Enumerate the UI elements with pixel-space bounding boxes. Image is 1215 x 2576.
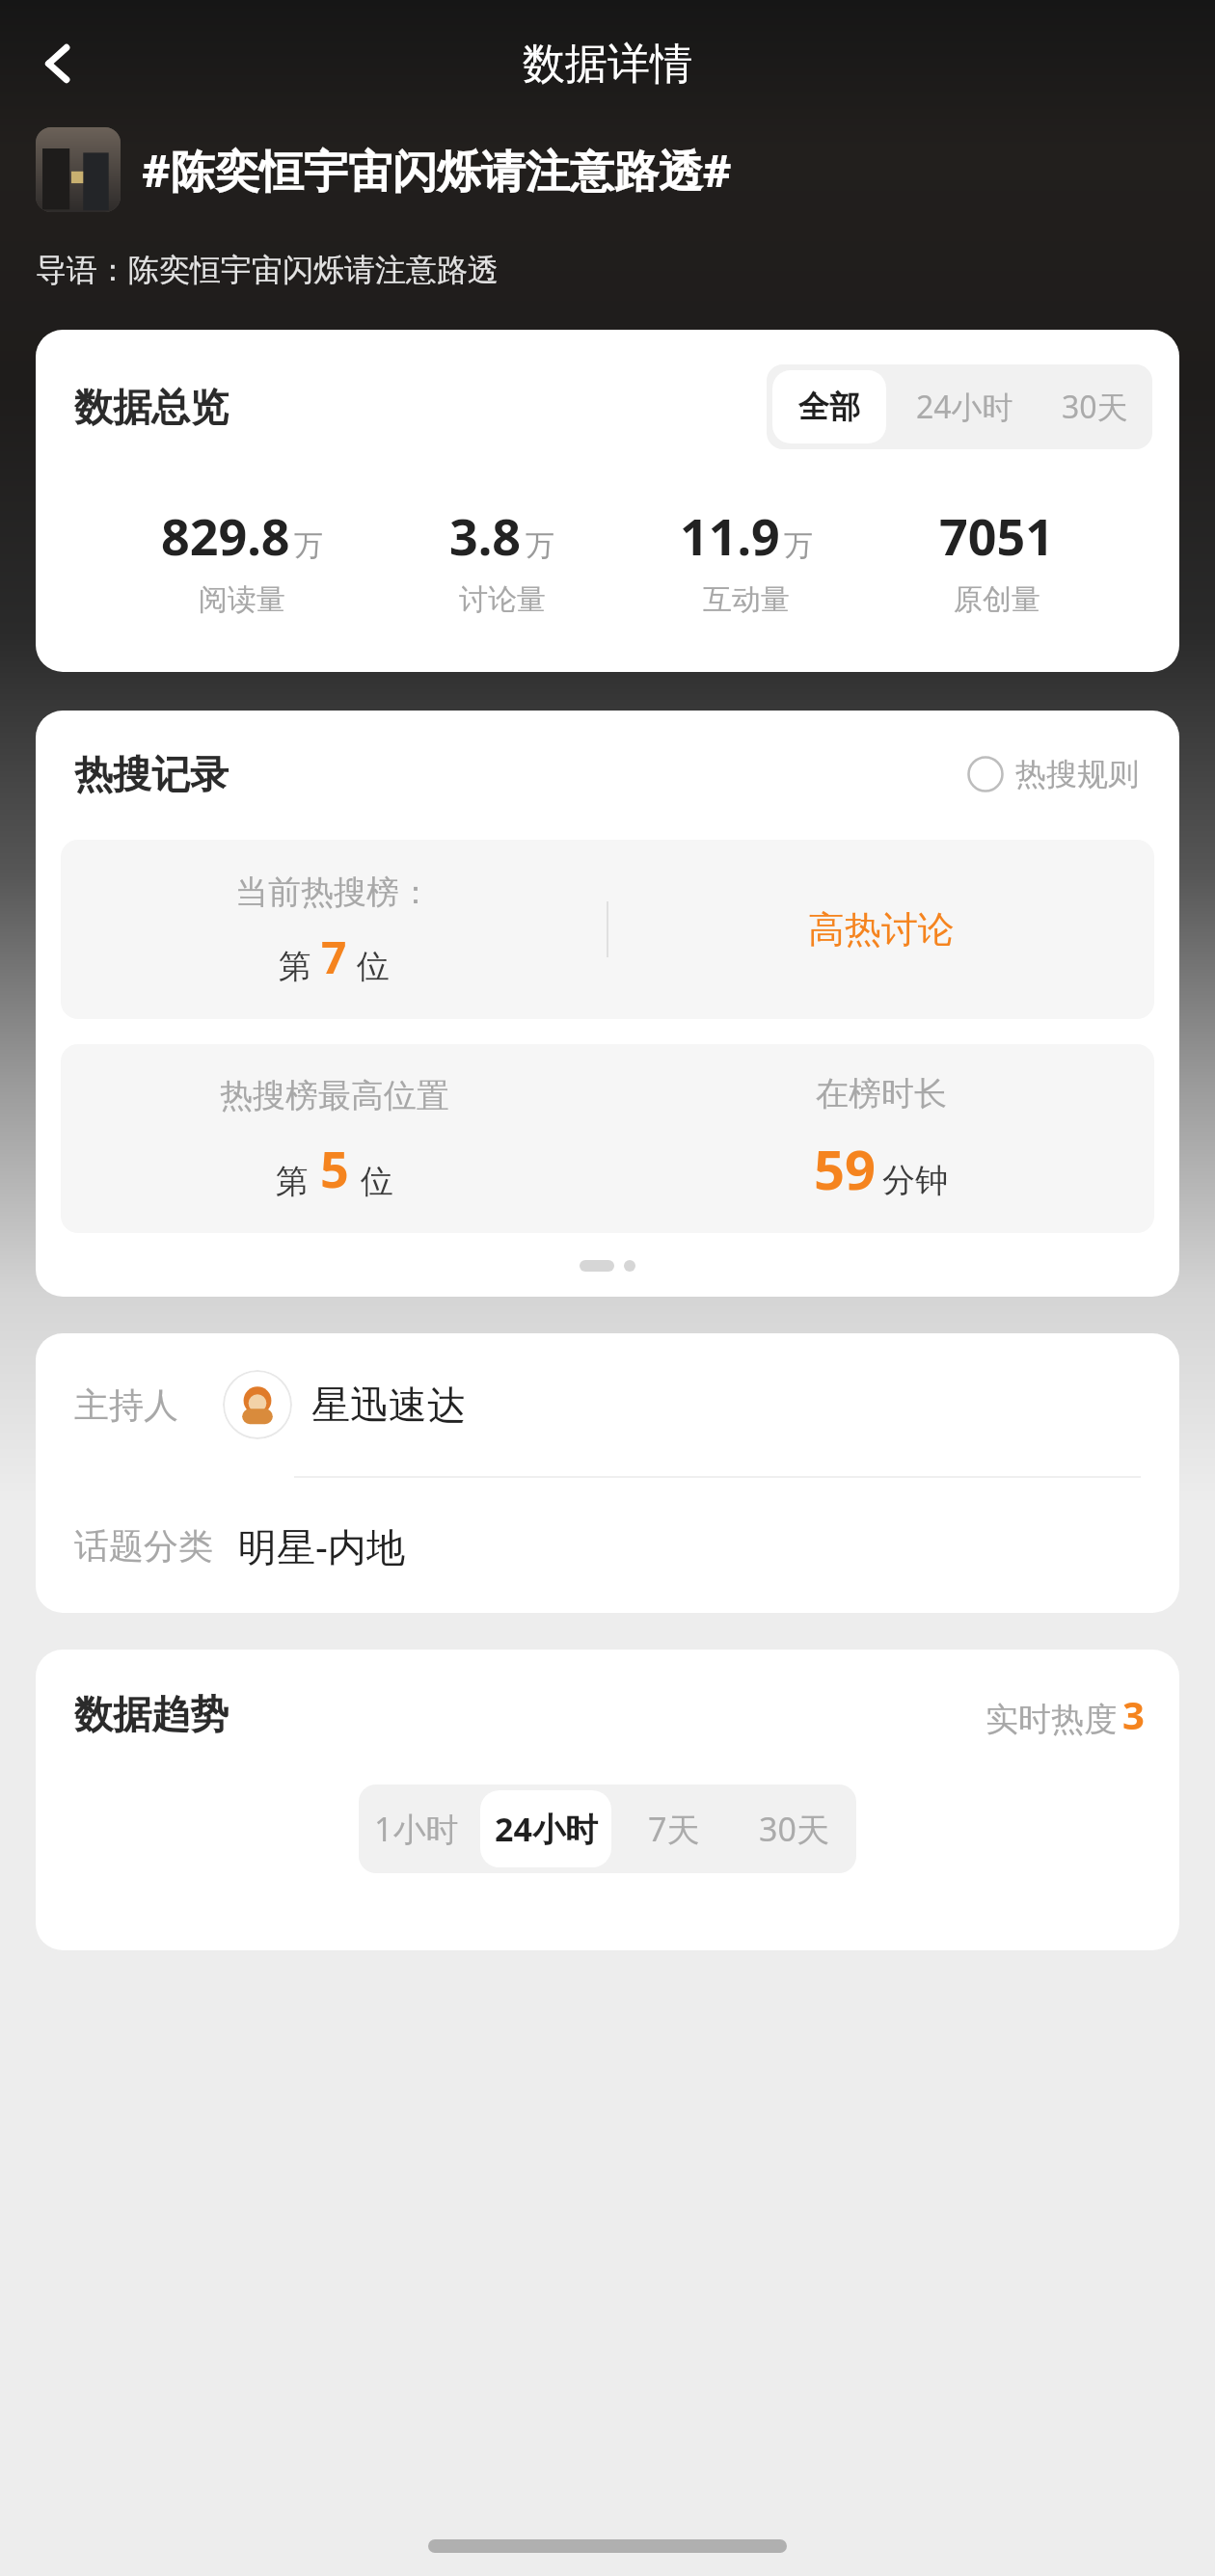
staticText: 原创量: [954, 581, 1040, 618]
staticText: 热搜榜最高位置: [220, 1075, 449, 1116]
staticText: 位: [361, 1161, 393, 1202]
staticText: 5: [320, 1134, 349, 1202]
staticText: 明星-内地: [238, 1519, 405, 1572]
staticText: 7天: [648, 1807, 700, 1851]
staticText: 第: [276, 1161, 309, 1202]
staticText: 星迅速达: [311, 1381, 466, 1429]
button[interactable]: Back: [17, 22, 100, 105]
staticText: 万: [294, 527, 323, 564]
staticText: 第: [279, 946, 311, 987]
button[interactable]: 7天: [623, 1790, 725, 1867]
staticText: 导语：陈奕恒宇宙闪烁请注意路透: [36, 251, 499, 289]
staticText: 热搜规则: [1015, 755, 1139, 793]
button[interactable]: 1小时: [364, 1790, 469, 1867]
staticText: 30天: [759, 1807, 829, 1851]
button[interactable]: 话题分类: [36, 1478, 1179, 1613]
button[interactable]: 24小时: [480, 1790, 611, 1867]
staticText: 讨论量: [459, 581, 546, 618]
staticText: 在榜时长: [816, 1073, 947, 1114]
staticText: 热搜记录: [74, 750, 229, 798]
staticText: 互动量: [703, 581, 790, 618]
staticText: 3.8: [449, 501, 522, 570]
staticText: 1小时: [374, 1807, 459, 1851]
staticText: 829.8: [161, 501, 290, 570]
staticText: 30天: [1062, 386, 1128, 428]
staticText: 位: [357, 946, 390, 987]
staticText: 实时热度: [985, 1699, 1117, 1740]
staticText: 59: [814, 1132, 877, 1205]
staticText: 主持人: [74, 1383, 178, 1427]
staticText: 阅读量: [199, 581, 285, 618]
staticText: 万: [526, 527, 554, 564]
staticText: 话题分类: [74, 1524, 213, 1568]
staticText: 当前热搜榜：: [235, 872, 432, 913]
staticText: 数据趋势: [74, 1690, 229, 1738]
staticText: 万: [784, 527, 813, 564]
button[interactable]: 30天: [737, 1790, 850, 1867]
staticText: 24小时: [916, 386, 1013, 428]
staticText: 高热讨论: [808, 906, 955, 953]
button[interactable]: 30天: [1042, 370, 1147, 443]
staticText: 3: [1122, 1688, 1145, 1740]
button[interactable]: 全部: [772, 370, 886, 443]
staticText: 7: [321, 926, 347, 987]
staticText: 11.9: [680, 501, 780, 570]
staticText: 7051: [939, 501, 1054, 570]
button[interactable]: 热搜规则: [961, 749, 1145, 799]
staticText: 全部: [798, 388, 860, 426]
button[interactable]: 24小时: [898, 370, 1031, 443]
staticText: 分钟: [882, 1160, 948, 1201]
staticText: 24小时: [495, 1807, 598, 1851]
staticText: #陈奕恒宇宙闪烁请注意路透#: [142, 140, 732, 201]
staticText: 数据详情: [523, 38, 692, 91]
button[interactable]: 主持人: [36, 1333, 1179, 1476]
staticText: 数据总览: [74, 383, 229, 431]
